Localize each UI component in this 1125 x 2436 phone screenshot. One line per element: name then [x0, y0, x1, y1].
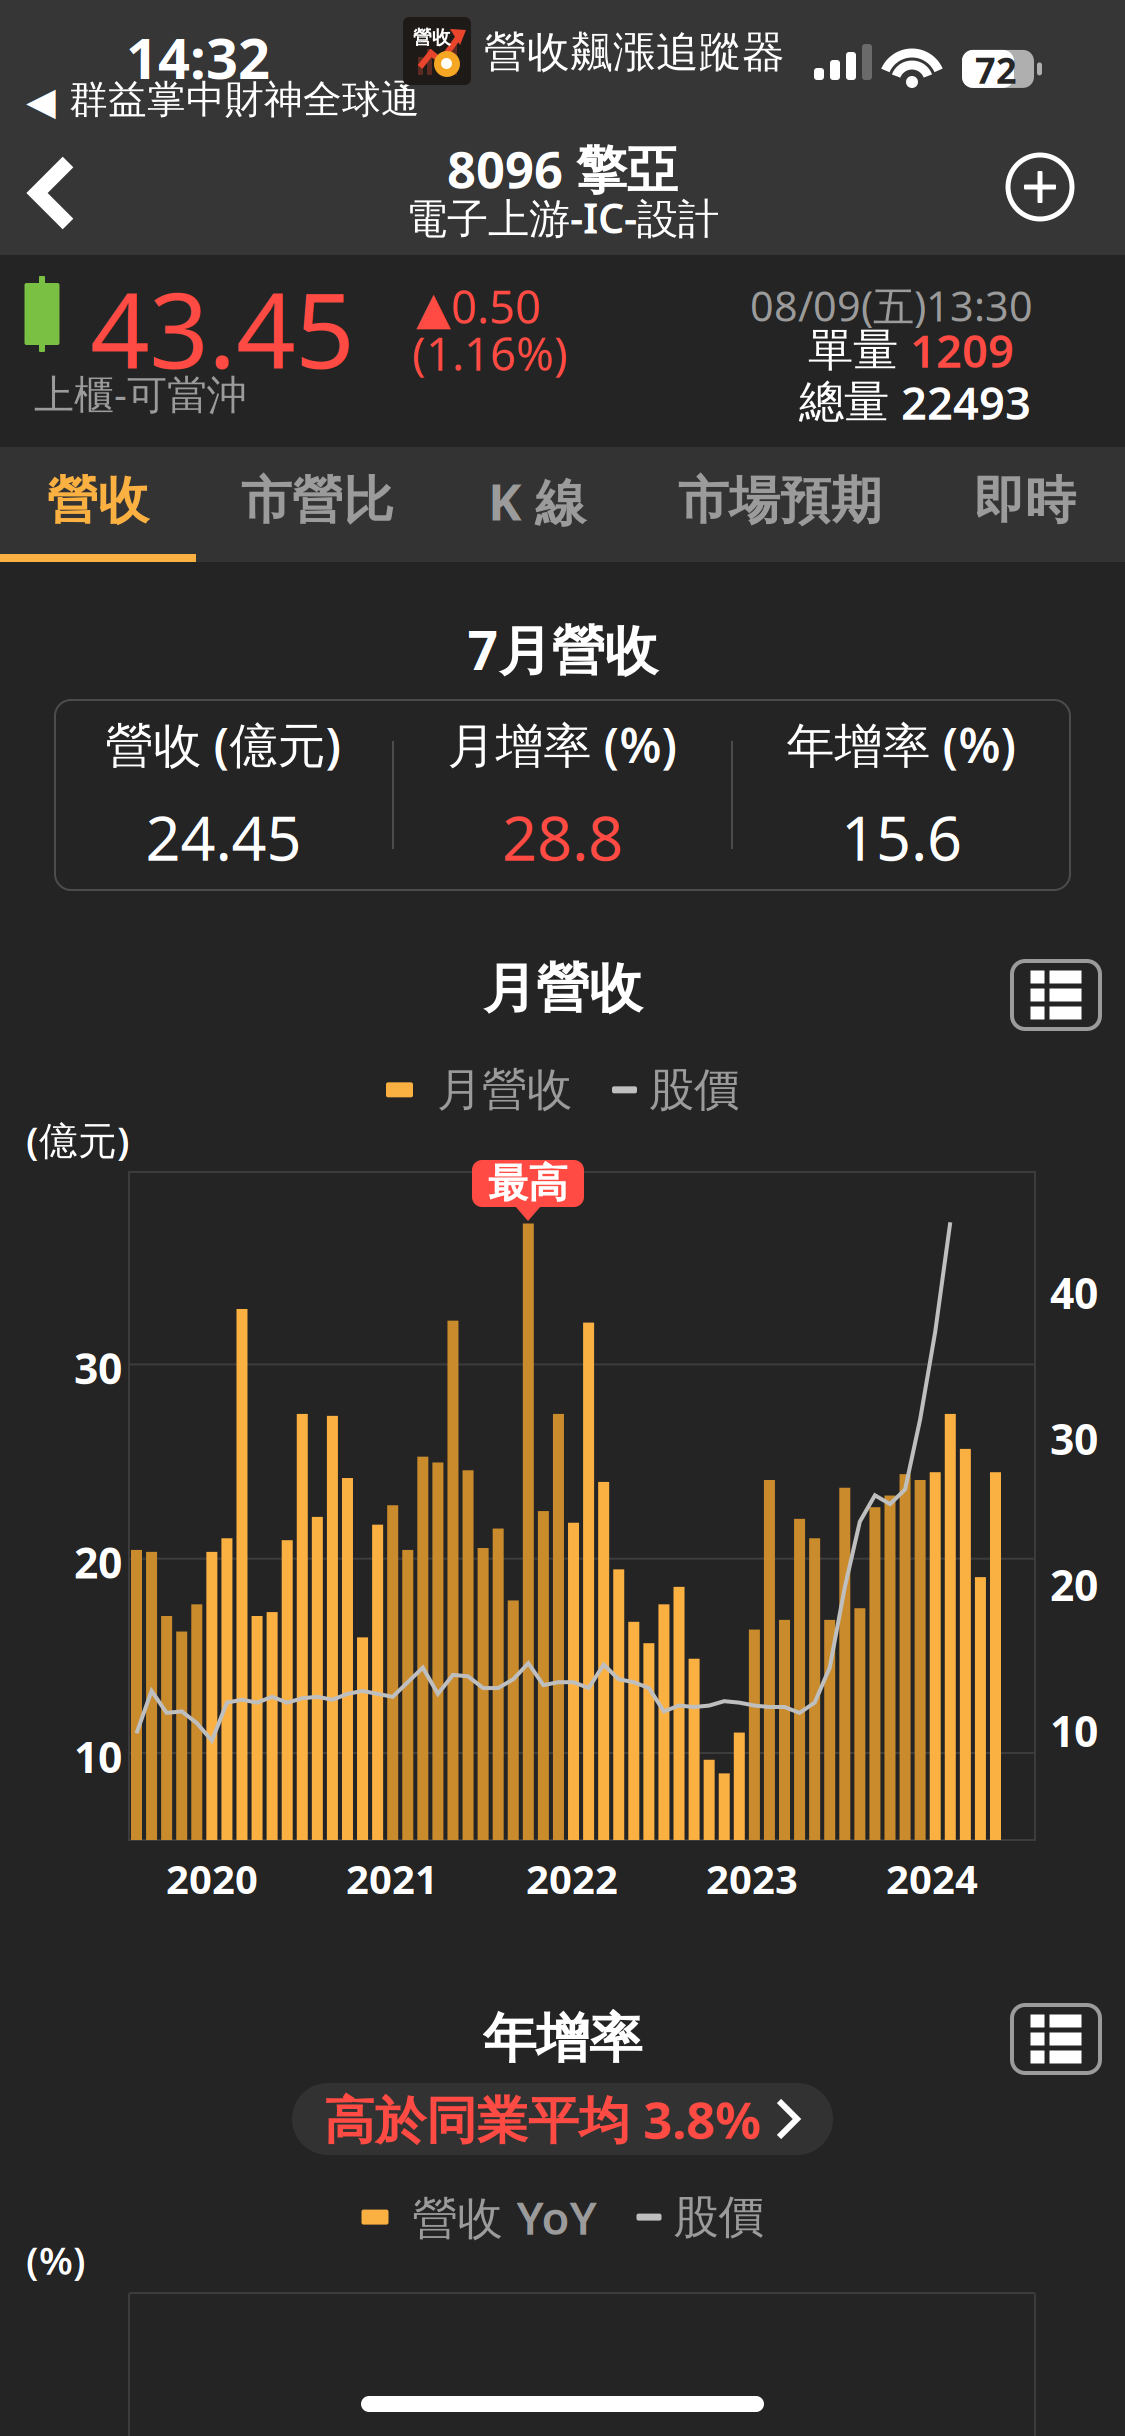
staticText: 2024 [886, 1852, 978, 1905]
staticText: 10 [74, 1728, 122, 1785]
staticText: ▲0.50 [416, 276, 541, 336]
button[interactable]: Show YoY table [1006, 1999, 1106, 2079]
staticText: 15.6 [841, 796, 962, 877]
staticText: 20 [1050, 1556, 1098, 1613]
staticText: 10 [1050, 1702, 1098, 1759]
staticText: 年增率 [483, 2006, 642, 2071]
staticText: 即時 [974, 470, 1076, 532]
staticText: 市場預期 [678, 470, 882, 532]
button[interactable]: 即時 [925, 447, 1125, 555]
staticText: 總量 [799, 374, 889, 430]
staticText: 08/09(五)13:30 [750, 278, 1033, 333]
button[interactable]: 市場預期 [635, 447, 925, 555]
staticText: 2020 [166, 1852, 258, 1905]
staticText: 2022 [526, 1852, 618, 1905]
staticText: 電子上游-IC-設計 [406, 190, 719, 245]
staticText: 72 [975, 46, 1017, 94]
button[interactable]: Show monthly revenue table [1006, 955, 1106, 1035]
staticText: 30 [74, 1339, 122, 1396]
staticText: 7月營收 [467, 614, 657, 685]
staticText: 單量 [808, 322, 898, 378]
staticText: 高於同業平均 3.8% [324, 2085, 761, 2153]
staticText: 22493 [889, 372, 1031, 432]
staticText: 24.45 [145, 796, 301, 877]
button[interactable]: Back [0, 139, 106, 247]
staticText: 最高 [488, 1159, 568, 1208]
button[interactable]: 市營比 [196, 447, 439, 555]
staticText: (1.16%) [412, 323, 568, 383]
staticText: 2023 [706, 1852, 798, 1905]
staticText: 上櫃-可當沖 [34, 367, 247, 420]
button[interactable]: 營收 [0, 447, 196, 555]
staticText: 8096 擎亞 [447, 135, 678, 202]
staticText: 市營比 [241, 470, 394, 532]
staticText: 營收 [47, 470, 149, 532]
staticText: 營收 [413, 26, 451, 49]
staticText: 年增率 (%) [786, 712, 1016, 776]
button[interactable]: 高於同業平均 3.8% [292, 2083, 833, 2155]
staticText: K 線 [488, 467, 586, 535]
staticText: 營收飆漲追蹤器 [484, 26, 785, 78]
staticText: 股價 [673, 2189, 763, 2245]
staticText: 28.8 [502, 796, 623, 877]
staticText: (億元) [26, 1114, 130, 1165]
staticText: 40 [1050, 1264, 1098, 1321]
staticText: 43.45 [90, 259, 354, 397]
staticText: 14:32 [126, 20, 270, 94]
staticText: 營收 YoY [412, 2187, 596, 2247]
staticText: 30 [1050, 1410, 1098, 1467]
staticText: 月營收 [483, 956, 642, 1021]
button[interactable]: K 線 [439, 447, 635, 555]
button[interactable]: Add to watchlist [986, 133, 1094, 241]
staticText: 月營收 [437, 1062, 572, 1118]
staticText: ◀ 群益掌中財神全球通 [26, 76, 420, 123]
staticText: 股價 [649, 1062, 739, 1118]
staticText: 1209 [898, 320, 1014, 380]
staticText: (%) [26, 2234, 86, 2285]
staticText: 營收 (億元) [105, 712, 341, 776]
staticText: 20 [74, 1534, 122, 1590]
staticText: 2021 [346, 1852, 438, 1905]
staticText: 月增率 (%) [447, 712, 677, 776]
